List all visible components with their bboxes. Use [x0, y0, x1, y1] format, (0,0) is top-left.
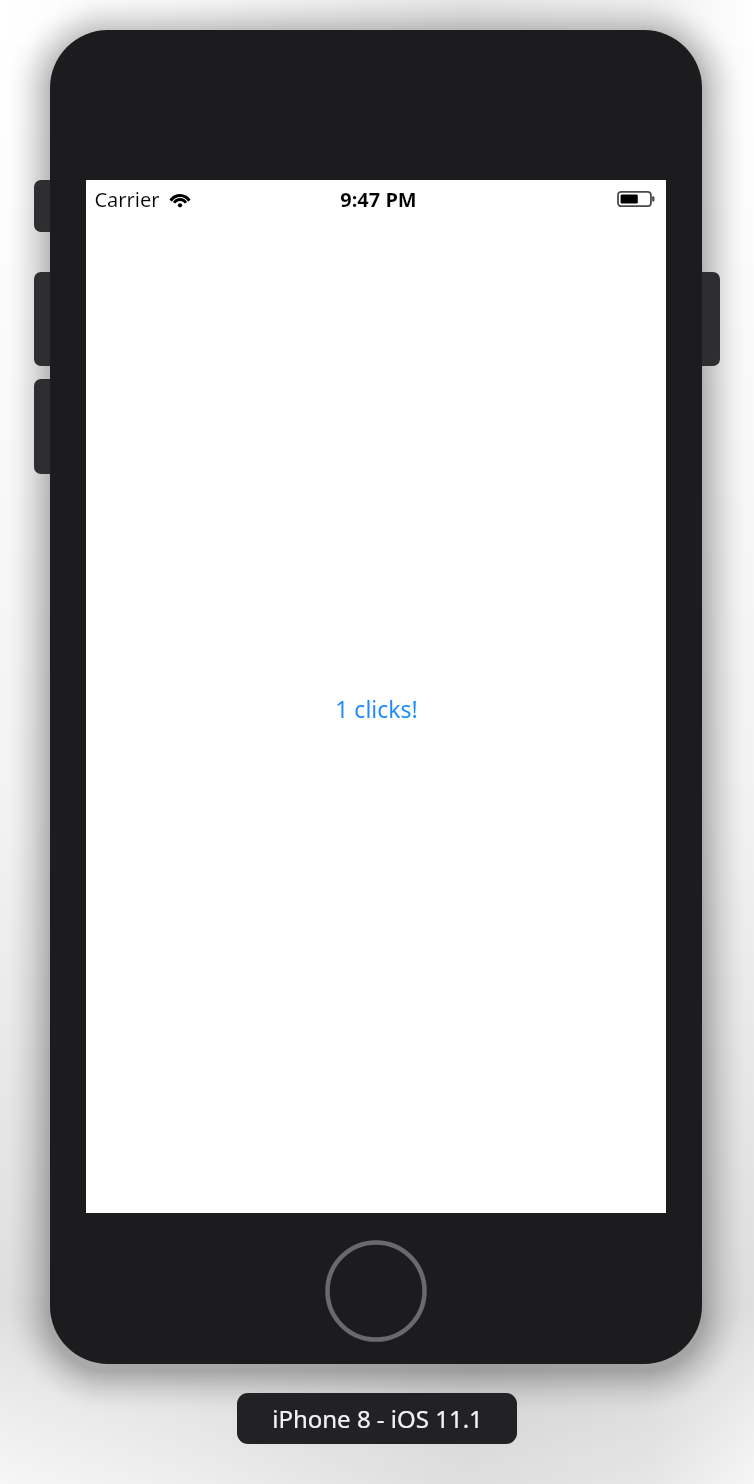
- staticText: iPhone 8 - iOS 11.1: [272, 1402, 483, 1435]
- button[interactable]: Home: [325, 1240, 427, 1342]
- staticText: 9:47 PM: [340, 186, 417, 213]
- button[interactable]: iPhone 8 - iOS 11.1: [237, 1393, 517, 1444]
- button[interactable]: 1 clicks!: [327, 689, 426, 728]
- staticText: Carrier: [94, 186, 160, 213]
- staticText: 1 clicks!: [335, 693, 418, 724]
